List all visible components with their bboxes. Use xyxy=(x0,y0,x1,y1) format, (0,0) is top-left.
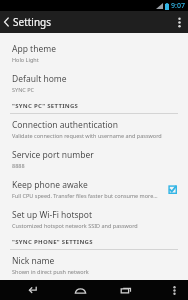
staticText: App theme xyxy=(12,43,56,55)
staticText: 8888 xyxy=(12,162,25,169)
staticText: Default home xyxy=(12,73,67,85)
staticText: "SYNC PC" SETTINGS xyxy=(12,102,79,110)
staticText: Keep phone awake xyxy=(12,179,88,191)
staticText: Customized hotspot network SSID and pass… xyxy=(12,222,138,229)
button[interactable]: Back to Settings xyxy=(0,11,58,33)
button[interactable]: More options xyxy=(170,11,188,33)
staticText: 9:07 xyxy=(171,1,185,11)
button[interactable]: Recent apps xyxy=(113,280,139,300)
staticText: Settings xyxy=(13,15,52,29)
button[interactable]: Default home xyxy=(0,68,188,98)
staticText: Set up Wi-Fi hotspot xyxy=(12,209,93,221)
staticText: Connection authentication xyxy=(12,119,118,131)
button[interactable]: Keep phone awake xyxy=(0,174,188,204)
button[interactable]: Nick name xyxy=(0,250,188,280)
button[interactable]: Service port number xyxy=(0,144,188,174)
button[interactable]: Checked, Keep phone awake xyxy=(164,181,180,197)
staticText: "SYNC PHONE" SETTINGS xyxy=(12,238,93,246)
button[interactable]: Set up Wi-Fi hotspot xyxy=(0,204,188,234)
staticText: SYNC PC xyxy=(12,86,35,93)
staticText: Service port number xyxy=(12,149,94,161)
button[interactable]: Home xyxy=(67,280,93,300)
button[interactable]: Connection authentication xyxy=(0,114,188,144)
staticText: Shown in direct push network xyxy=(12,268,89,275)
staticText: Validate connection request with usernam… xyxy=(12,132,162,139)
staticText: Nick name xyxy=(12,255,55,267)
button[interactable]: Back xyxy=(21,280,47,300)
staticText: Full CPU speed. Transfer files faster bu… xyxy=(12,192,158,199)
staticText: Holo Light xyxy=(12,56,39,63)
button[interactable]: Menu xyxy=(166,280,182,300)
button[interactable]: App theme xyxy=(0,38,188,68)
